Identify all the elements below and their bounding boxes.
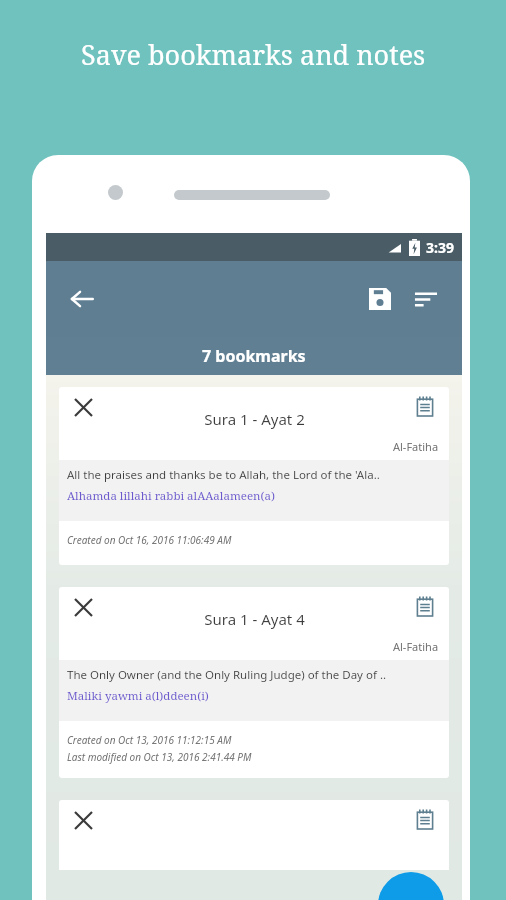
- staticText: Al-Fatiha: [393, 639, 439, 654]
- button[interactable]: Add bookmark: [378, 872, 444, 900]
- staticText: Last modified on Oct 13, 2016 2:41.44 PM: [67, 750, 252, 764]
- staticText: Sura 1 - Ayat 2: [204, 409, 305, 429]
- button[interactable]: Remove bookmark: [65, 389, 101, 425]
- button[interactable]: Remove bookmark: [65, 589, 101, 625]
- button[interactable]: Remove bookmark: [59, 587, 449, 778]
- button[interactable]: Save: [358, 277, 402, 321]
- button[interactable]: Back: [60, 277, 104, 321]
- staticText: Save bookmarks and notes: [81, 36, 426, 73]
- button[interactable]: Note: [409, 590, 441, 622]
- other: Note: [409, 803, 441, 835]
- staticText: Alhamda lillahi rabbi alAAalameen(a): [67, 488, 275, 504]
- button[interactable]: Remove bookmark: [59, 800, 449, 870]
- staticText: 7 bookmarks: [202, 345, 306, 367]
- button[interactable]: Remove bookmark: [59, 387, 449, 565]
- button[interactable]: Note: [409, 390, 441, 422]
- button[interactable]: Sort: [404, 277, 448, 321]
- staticText: Created on Oct 13, 2016 11:12:15 AM: [67, 733, 232, 747]
- staticText: Al-Fatiha: [393, 439, 439, 454]
- staticText: Sura 1 - Ayat 4: [204, 609, 305, 629]
- staticText: All the praises and thanks be to Allah, …: [67, 467, 380, 483]
- button[interactable]: Remove bookmark: [65, 802, 101, 838]
- staticText: Created on Oct 16, 2016 11:06:49 AM: [67, 533, 232, 547]
- staticText: Maliki yawmi a(l)ddeen(i): [67, 688, 209, 704]
- staticText: The Only Owner (and the Only Ruling Judg…: [67, 667, 387, 683]
- staticText: 3:39: [426, 238, 454, 257]
